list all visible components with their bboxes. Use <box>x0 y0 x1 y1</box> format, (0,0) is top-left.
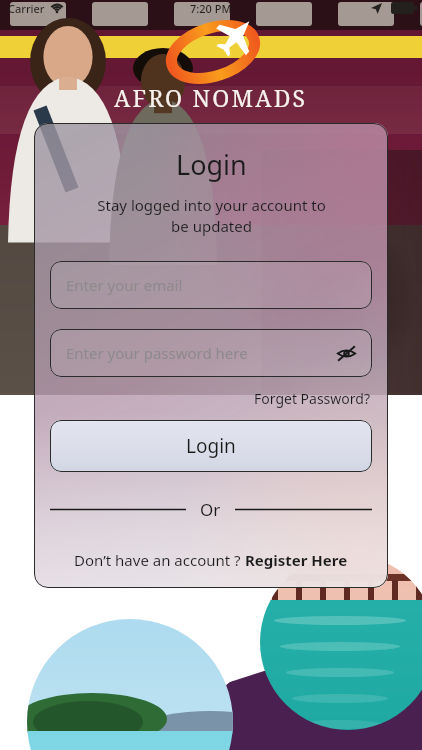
button[interactable]: Login <box>50 420 372 472</box>
staticText: Enter your email <box>66 275 183 295</box>
button[interactable]: Enter your email <box>50 261 372 309</box>
staticText: Forget Password? <box>254 389 370 408</box>
button[interactable]: Show password <box>330 337 362 369</box>
button[interactable]: Don’t have an account ? <box>68 547 354 573</box>
staticText: Or <box>200 498 221 521</box>
staticText: Carrier <box>8 1 45 16</box>
staticText: Login <box>176 146 247 183</box>
staticText: Register Here <box>245 550 348 570</box>
button[interactable]: Enter your password here <box>50 329 372 377</box>
staticText: Don’t have an account ? <box>74 550 245 570</box>
staticText: 7:20 PM <box>190 1 232 16</box>
staticText: Enter your password here <box>66 343 248 363</box>
staticText: AFRO NOMADS <box>114 82 308 113</box>
staticText: Login <box>186 433 236 459</box>
staticText: Stay logged into your account to be upda… <box>97 195 326 237</box>
button[interactable]: Forget Password? <box>252 387 372 410</box>
